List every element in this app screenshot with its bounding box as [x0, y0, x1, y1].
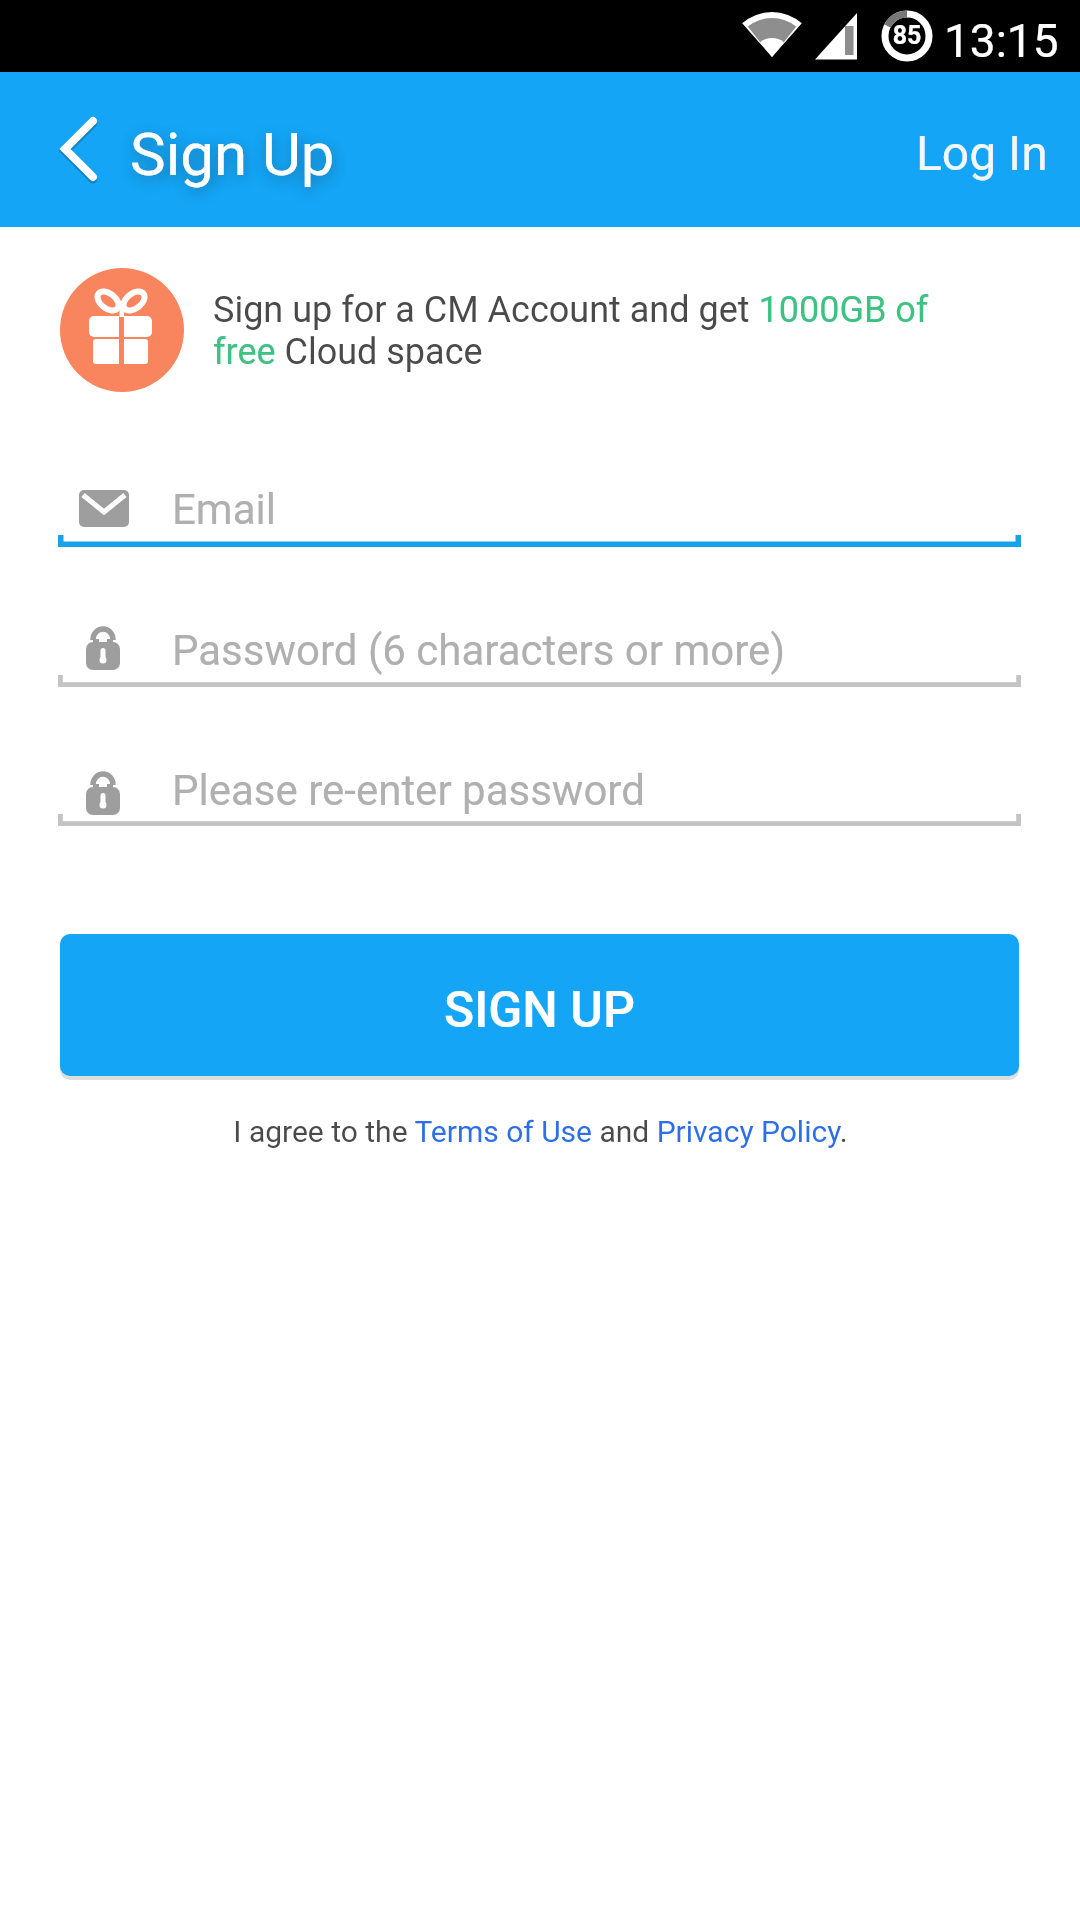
- staticText: Log In: [916, 125, 1048, 181]
- button[interactable]: Log In: [916, 125, 1048, 181]
- staticText: Sign Up: [130, 119, 335, 189]
- staticText: SIGN UP: [444, 981, 635, 1040]
- staticText: Sign up for a CM Account and get 1000GB …: [213, 289, 993, 373]
- button[interactable]: [58, 600, 1021, 692]
- staticText: 13:15: [944, 14, 1059, 68]
- staticText: Password (6 characters or more): [172, 626, 785, 675]
- button[interactable]: I agree to the Terms of Use and Privacy …: [0, 1114, 1080, 1149]
- staticText: I agree to the Terms of Use and Privacy …: [233, 1114, 848, 1149]
- button[interactable]: [58, 740, 1021, 832]
- staticText: Email: [172, 485, 276, 534]
- staticText: Please re-enter password: [172, 766, 645, 815]
- button[interactable]: [58, 460, 1021, 552]
- button[interactable]: Sign Up: [30, 92, 360, 207]
- button[interactable]: SIGN UP: [60, 934, 1019, 1076]
- staticText: 85: [885, 21, 929, 50]
